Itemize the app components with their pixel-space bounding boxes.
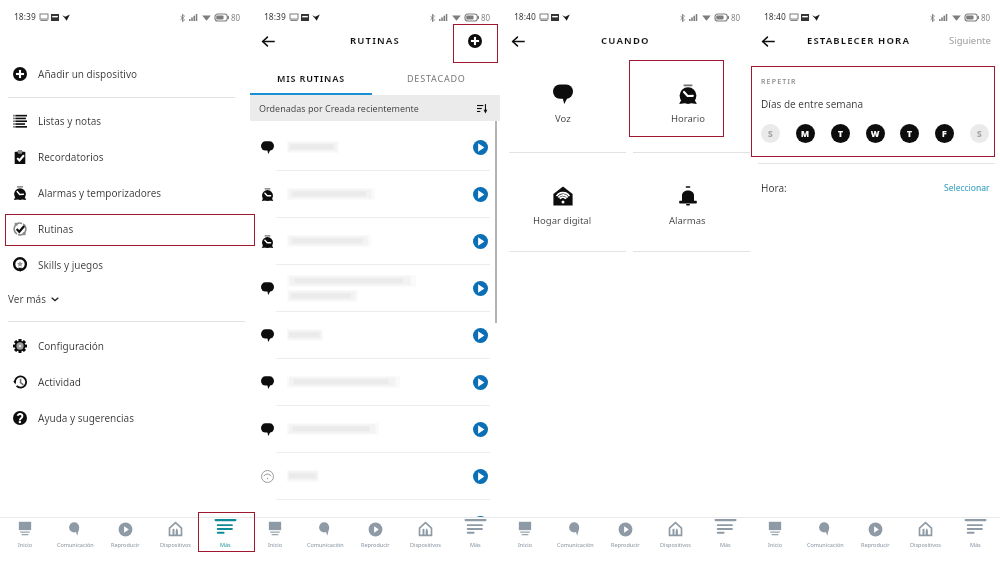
button[interactable]: Play routine [250, 171, 500, 218]
button[interactable]: Dispositivos [900, 517, 950, 567]
other: Play routine [473, 187, 488, 202]
staticText: Actividad [38, 375, 81, 389]
button[interactable]: Recordatorios [0, 139, 250, 175]
button[interactable]: DESTACADO [372, 71, 500, 85]
staticText: 18:40 [764, 11, 786, 23]
button[interactable]: Actividad [0, 364, 250, 400]
button[interactable]: Comunicación [800, 517, 850, 567]
button[interactable]: Inicio [250, 517, 300, 567]
staticText: W [871, 128, 880, 140]
button[interactable]: Más [700, 517, 750, 567]
staticText: Días de entre semana [761, 97, 864, 111]
staticText: CUANDO [601, 34, 650, 47]
button[interactable]: Configuración [0, 328, 250, 364]
button[interactable]: Rutinas [0, 211, 250, 247]
button[interactable]: Inicio [750, 517, 800, 567]
staticText: Voz [555, 112, 571, 125]
button[interactable]: Alarmas [625, 153, 750, 251]
button[interactable]: Ayuda y sugerencias [0, 400, 250, 436]
button[interactable]: Añadir un dispositivo [0, 56, 250, 92]
button[interactable]: Comunicación [550, 517, 600, 567]
button[interactable]: Voz [500, 60, 625, 152]
button[interactable]: Alarmas y temporizadores [0, 175, 250, 211]
other: Play routine [473, 422, 488, 437]
staticText: Dispositivos [410, 541, 441, 548]
staticText: Dispositivos [160, 541, 191, 548]
button[interactable]: Siguiente [945, 30, 995, 51]
staticText: Horario [671, 112, 705, 125]
button[interactable]: Play routine [250, 500, 500, 517]
button[interactable]: T [900, 124, 919, 143]
button[interactable]: Inicio [500, 517, 550, 567]
other: Play routine [473, 469, 488, 484]
button[interactable]: Reproducir [600, 517, 650, 567]
button[interactable]: F [935, 124, 954, 143]
button[interactable]: MIS RUTINAS [250, 71, 372, 85]
button[interactable]: Back [508, 31, 528, 51]
staticText: Reproducir [111, 541, 140, 548]
staticText: Ver más [8, 292, 46, 306]
button[interactable]: Play routine [250, 265, 500, 312]
button[interactable]: Play routine [250, 312, 500, 359]
button[interactable]: W [866, 124, 885, 143]
button[interactable]: Horario [625, 60, 750, 152]
button[interactable]: Add routine [466, 32, 484, 50]
button[interactable]: Listas y notas [0, 103, 250, 139]
staticText: RUTINAS [350, 34, 400, 47]
staticText: F [942, 128, 947, 140]
staticText: ESTABLECER HORA [807, 34, 911, 47]
staticText: DESTACADO [407, 72, 466, 84]
button[interactable]: Reproducir [850, 517, 900, 567]
staticText: Más [220, 541, 231, 548]
button[interactable]: Dispositivos [400, 517, 450, 567]
button[interactable]: M [796, 124, 815, 143]
staticText: Hogar digital [533, 214, 592, 227]
button[interactable]: Ver más [2, 283, 65, 315]
button[interactable]: Comunicación [50, 517, 100, 567]
staticText: Dispositivos [660, 541, 691, 548]
button[interactable]: Play routine [250, 218, 500, 265]
button[interactable]: Back [258, 31, 278, 51]
button[interactable]: Play routine [250, 453, 500, 500]
staticText: Inicio [268, 541, 283, 548]
button[interactable]: Dispositivos [650, 517, 700, 567]
staticText: Recordatorios [38, 150, 104, 164]
button[interactable]: Hora: [750, 164, 1000, 212]
button[interactable]: Skills y juegos [0, 247, 250, 283]
button[interactable]: Ordenadas por Creada recientemente [250, 95, 500, 121]
button[interactable]: Más [950, 517, 1000, 567]
staticText: Más [720, 541, 731, 548]
staticText: 80 [981, 12, 991, 23]
button[interactable]: Play routine [250, 406, 500, 453]
staticText: Añadir un dispositivo [38, 67, 138, 81]
button[interactable]: Reproducir [350, 517, 400, 567]
staticText: 18:39 [264, 11, 286, 23]
button[interactable]: Más [200, 517, 250, 567]
button[interactable]: Hogar digital [500, 153, 625, 251]
button[interactable]: Más [450, 517, 500, 567]
button[interactable]: Play routine [250, 359, 500, 406]
other: Play routine [473, 328, 488, 343]
button[interactable]: S [970, 124, 989, 143]
button[interactable]: Reproducir [100, 517, 150, 567]
staticText: Comunicación [307, 541, 344, 548]
staticText: Más [970, 541, 981, 548]
other: Play routine [473, 140, 488, 155]
staticText: Comunicación [557, 541, 594, 548]
button[interactable]: Comunicación [300, 517, 350, 567]
button[interactable]: T [831, 124, 850, 143]
button[interactable]: Dispositivos [150, 517, 200, 567]
button[interactable]: Back [758, 31, 778, 51]
staticText: Inicio [18, 541, 33, 548]
staticText: 18:40 [514, 11, 536, 23]
button[interactable]: Inicio [0, 517, 50, 567]
button[interactable]: Play routine [250, 124, 500, 171]
staticText: Hora: [761, 181, 787, 195]
staticText: 80 [481, 12, 491, 23]
staticText: T [907, 128, 912, 140]
staticText: Ordenadas por Creada recientemente [259, 102, 419, 114]
staticText: Rutinas [38, 222, 74, 236]
staticText: Dispositivos [910, 541, 941, 548]
staticText: Más [470, 541, 481, 548]
button[interactable]: S [761, 124, 780, 143]
